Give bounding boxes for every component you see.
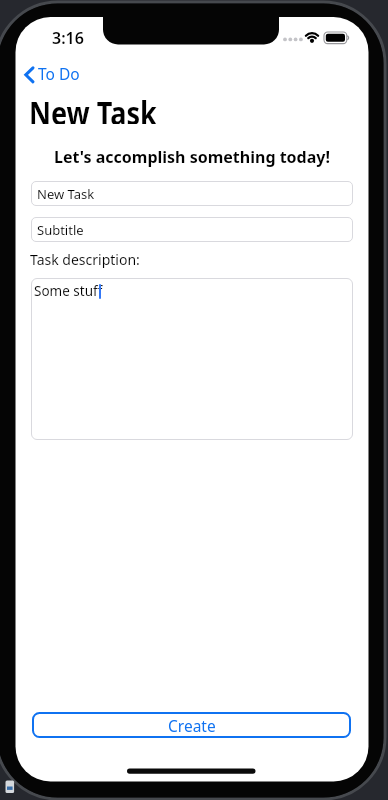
button[interactable]: To Do <box>19 61 80 86</box>
button[interactable]: Subtitle <box>31 217 353 242</box>
staticText: New Task <box>37 185 95 203</box>
staticText: Task description: <box>30 250 140 268</box>
button[interactable]: Create <box>32 712 351 738</box>
staticText: 3:16 <box>52 27 84 47</box>
staticText: New Task <box>29 90 157 124</box>
staticText: Some stuff <box>34 282 103 300</box>
staticText: To Do <box>38 63 80 84</box>
button[interactable]: Some stuff <box>31 278 353 440</box>
button[interactable]: New Task <box>31 181 353 206</box>
staticText: Subtitle <box>37 221 84 239</box>
staticText: Create <box>168 715 216 736</box>
staticText: Let's accomplish something today! <box>54 146 330 168</box>
